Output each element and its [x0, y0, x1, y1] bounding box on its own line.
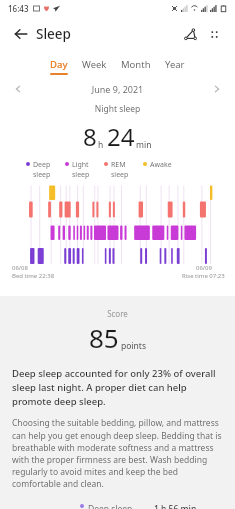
- staticText: June 9, 2021: [26, 83, 209, 95]
- staticText: Month: [121, 58, 151, 71]
- button[interactable]: Week: [75, 55, 114, 78]
- button[interactable]: Share: [179, 23, 201, 45]
- button[interactable]: Day: [43, 55, 75, 78]
- button[interactable]: Back: [10, 23, 32, 45]
- button[interactable]: More options: [203, 23, 225, 45]
- staticText: Deep sleep: [88, 503, 154, 509]
- staticText: Sleep: [36, 25, 71, 43]
- staticText: 1 h 56 min: [154, 503, 197, 509]
- button[interactable]: Year: [158, 55, 192, 78]
- staticText: 06/08: [12, 264, 28, 272]
- staticText: 16:43: [8, 3, 29, 14]
- button[interactable]: Next day: [209, 81, 225, 97]
- staticText: h: [98, 139, 104, 151]
- staticText: REM: [111, 160, 126, 170]
- button[interactable]: Previous day: [10, 81, 26, 97]
- staticText: Week: [82, 58, 107, 71]
- staticText: Day: [50, 58, 68, 71]
- button[interactable]: Deep sleep: [80, 503, 223, 509]
- staticText: Deep: [33, 160, 51, 170]
- staticText: min: [136, 139, 152, 151]
- staticText: Light: [72, 160, 89, 170]
- staticText: Year: [165, 58, 185, 71]
- staticText: Bed time 22:38: [12, 272, 55, 280]
- staticText: Awake: [150, 160, 172, 170]
- staticText: Deep sleep accounted for only 23% of ove…: [12, 367, 223, 408]
- staticText: points: [121, 340, 146, 352]
- staticText: 06/09: [196, 264, 212, 272]
- staticText: Rise time 07:23: [182, 272, 225, 280]
- staticText: 24: [107, 120, 135, 153]
- staticText: 85: [89, 320, 119, 355]
- staticText: sleep: [33, 170, 51, 180]
- staticText: Night sleep: [0, 103, 235, 115]
- button[interactable]: Month: [114, 55, 158, 78]
- staticText: sleep: [111, 170, 129, 180]
- staticText: 8: [83, 120, 97, 153]
- staticText: sleep: [72, 170, 90, 180]
- staticText: Score: [0, 308, 235, 319]
- staticText: Choosing the suitable bedding, pillow, a…: [12, 417, 223, 489]
